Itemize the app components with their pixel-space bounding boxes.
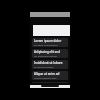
button[interactable]: Incididunt ut labore (32, 60, 68, 69)
staticText: Aliqua ut enim ad (34, 72, 60, 76)
button[interactable]: Adipiscing elit sed (32, 49, 68, 58)
staticText: do eiusmod tempor (34, 54, 58, 57)
button[interactable]: Aliqua ut enim ad (32, 71, 68, 80)
staticText: et dolore magna (34, 65, 54, 68)
staticText: minim veniam quis (34, 76, 57, 79)
staticText: Adipiscing elit sed (34, 50, 60, 54)
staticText: Incididunt ut labore (34, 61, 63, 65)
staticText: sit amet consectetur (34, 43, 58, 46)
staticText: Lorem ipsum dolor (34, 39, 62, 43)
button[interactable]: Lorem ipsum dolor (32, 38, 68, 47)
